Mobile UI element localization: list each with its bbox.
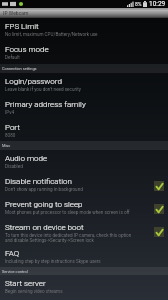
staticText: Audio mode: [5, 154, 48, 163]
button[interactable]: FPS Limit: [0, 18, 168, 41]
staticText: 10:29: [149, 0, 166, 8]
button[interactable]: Port: [0, 119, 168, 141]
button[interactable]: Start server: [0, 275, 168, 300]
staticText: To turn this device into dedicated IP ca…: [5, 233, 132, 238]
button[interactable]: Disable notification: [0, 173, 168, 196]
staticText: IP Webcam: [3, 10, 29, 16]
button[interactable]: Stream on device boot: [0, 219, 168, 245]
staticText: Stream on device boot: [5, 223, 84, 232]
staticText: Begin serving video streams: [5, 289, 63, 294]
staticText: and disable Settings->Security->Screen l…: [5, 238, 94, 243]
staticText: Leave blank if you don't need security: [5, 87, 81, 92]
staticText: Focus mode: [5, 45, 49, 54]
staticText: No limit, maximum CPU/Battery/Network us…: [5, 32, 98, 37]
staticText: Primary address family: [5, 100, 86, 109]
staticText: Default: [5, 55, 20, 60]
staticText: Including step by step instructions Skyp…: [5, 259, 101, 264]
staticText: Don't show app running in background: [5, 187, 83, 192]
staticText: Disabled: [5, 164, 23, 169]
button[interactable]: Focus mode: [0, 41, 168, 64]
button[interactable]: FAQ: [0, 245, 168, 267]
staticText: FPS Limit: [5, 22, 39, 31]
staticText: Login/password: [5, 77, 62, 86]
staticText: FAQ: [5, 249, 20, 258]
staticText: Port: [5, 123, 20, 132]
staticText: Start server: [5, 279, 46, 288]
button[interactable]: Prevent going to sleep: [0, 196, 168, 219]
button[interactable]: Primary address family: [0, 96, 168, 119]
staticText: Most phones put processor to sleep mode …: [5, 210, 130, 215]
staticText: 8%: [135, 1, 142, 7]
staticText: Disable notification: [5, 177, 72, 186]
button[interactable]: Login/password: [0, 73, 168, 96]
staticText: Misc: [2, 143, 11, 148]
staticText: Service control: [2, 269, 28, 274]
staticText: Connection settings: [2, 66, 37, 71]
staticText: 8080: [5, 133, 16, 138]
button[interactable]: Audio mode: [0, 150, 168, 173]
staticText: IPv4: [5, 110, 14, 115]
staticText: Prevent going to sleep: [5, 200, 83, 209]
